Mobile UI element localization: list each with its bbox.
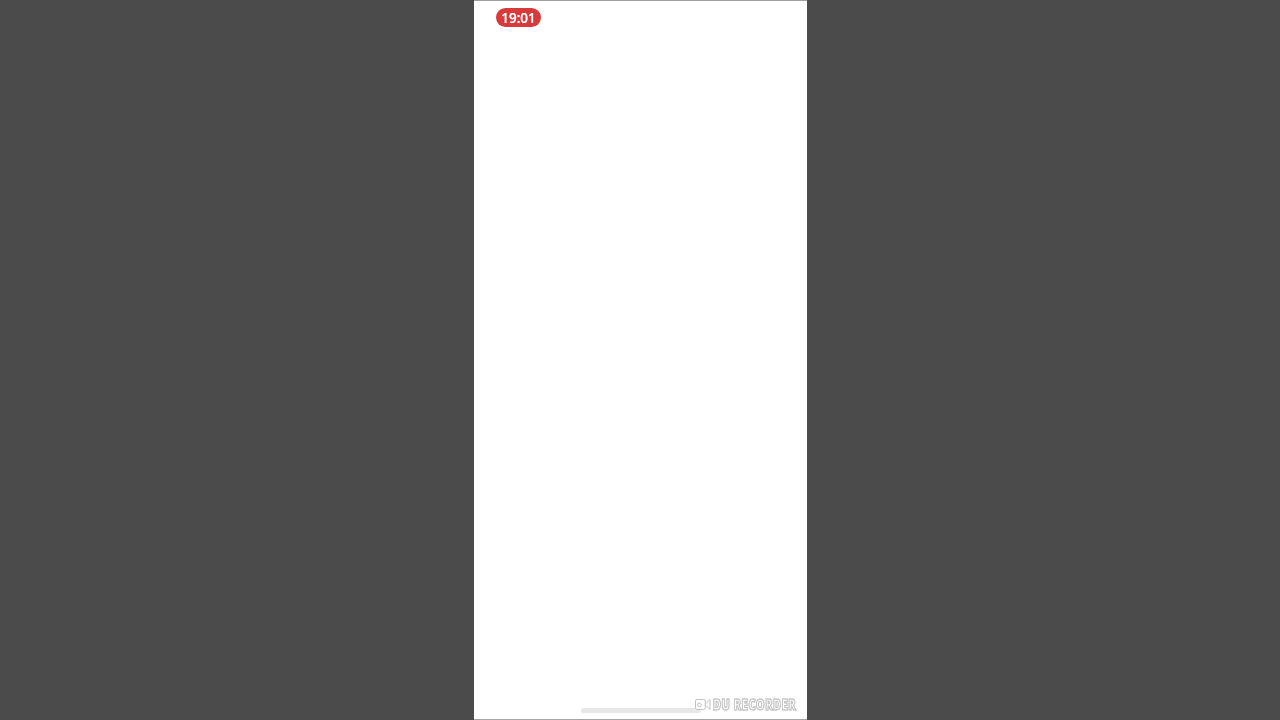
staticText: 19:01 [501, 9, 536, 27]
button[interactable]: Home gesture handle [581, 708, 701, 713]
other: Screen recorder watermark [695, 699, 710, 710]
button[interactable]: Recording time 19:01 [496, 8, 541, 27]
staticText: DU RECORDER [713, 694, 797, 714]
